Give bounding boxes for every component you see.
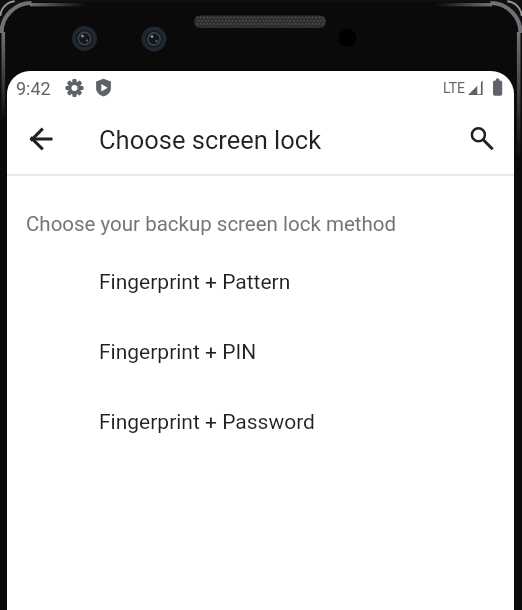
staticText: 9:42: [16, 78, 51, 99]
staticText: Fingerprint + Pattern: [99, 270, 291, 295]
staticText: Fingerprint + PIN: [99, 340, 257, 365]
button[interactable]: Fingerprint + Password: [7, 387, 514, 457]
button[interactable]: Fingerprint + Pattern: [7, 247, 514, 317]
button[interactable]: Fingerprint + PIN: [7, 317, 514, 387]
staticText: Fingerprint + Password: [99, 410, 315, 435]
staticText: LTE: [443, 80, 465, 96]
button[interactable]: [18, 115, 66, 163]
button[interactable]: [455, 112, 503, 160]
staticText: Choose your backup screen lock method: [26, 212, 397, 236]
staticText: Choose screen lock: [99, 125, 322, 155]
